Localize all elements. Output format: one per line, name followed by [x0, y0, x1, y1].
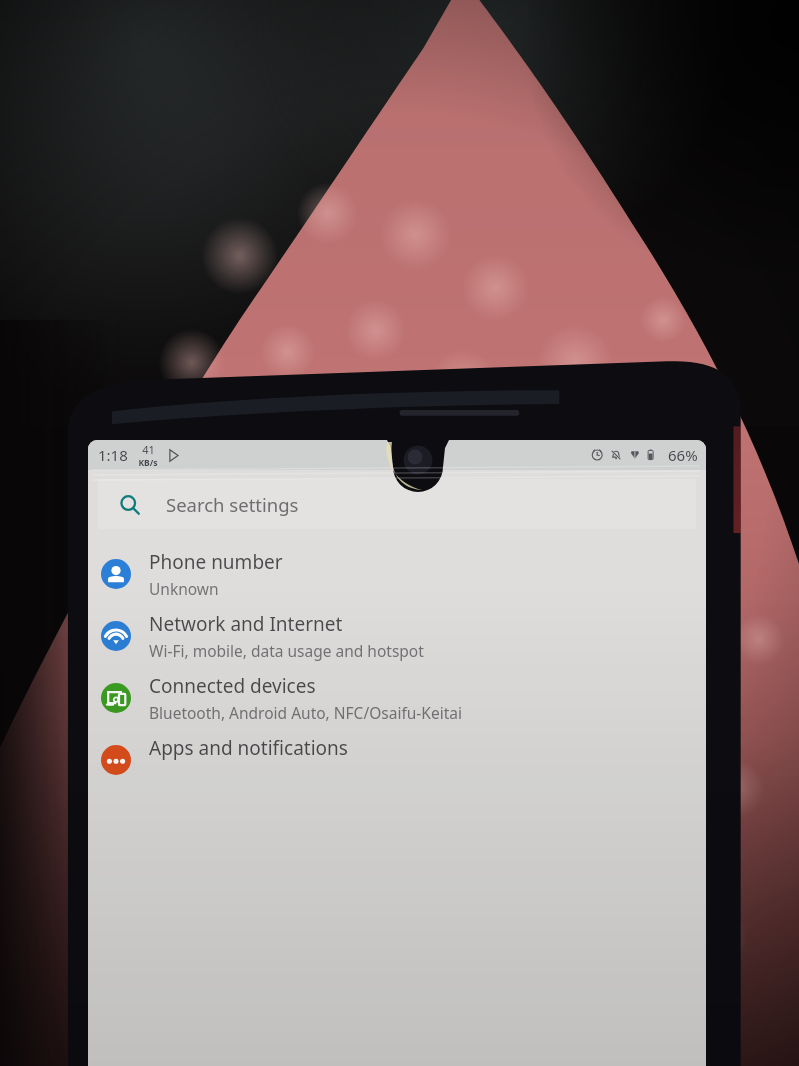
- staticText: Wi-Fi, mobile, data usage and hotspot: [149, 640, 424, 661]
- staticText: 41: [142, 442, 155, 457]
- staticText: 1:18: [98, 445, 128, 465]
- staticText: Connected devices: [149, 673, 316, 699]
- button[interactable]: Apps and notifications: [88, 729, 706, 791]
- button[interactable]: Search: [98, 479, 696, 529]
- button[interactable]: Phone number: [88, 543, 706, 605]
- staticText: Search settings: [166, 492, 299, 517]
- staticText: Bluetooth, Android Auto, NFC/Osaifu-Keit…: [149, 702, 462, 723]
- staticText: 66%: [668, 445, 698, 465]
- staticText: Apps and notifications: [149, 735, 348, 761]
- other: Search: [119, 494, 141, 516]
- button[interactable]: Connected devices: [88, 667, 706, 729]
- staticText: Phone number: [149, 549, 283, 575]
- button[interactable]: Network and Internet: [88, 605, 706, 667]
- staticText: Unknown: [149, 578, 219, 599]
- staticText: KB/s: [138, 457, 158, 469]
- staticText: Network and Internet: [149, 611, 343, 637]
